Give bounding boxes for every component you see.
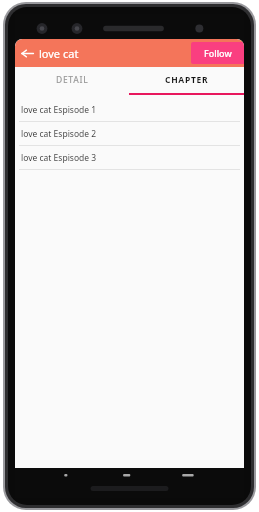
staticText: love cat Espisode 2 [21,128,97,140]
staticText: CHAPTER [165,74,209,86]
button[interactable]: love cat Espisode 1 [15,98,244,121]
button[interactable]: Back [15,39,39,67]
button[interactable]: love cat Espisode 3 [15,146,244,169]
button[interactable]: love cat Espisode 2 [15,122,244,145]
button[interactable]: DETAIL [15,67,129,93]
button[interactable]: CHAPTER [129,67,244,93]
staticText: love cat Espisode 3 [21,152,97,164]
staticText: Follow [204,47,232,59]
staticText: love cat [39,46,79,61]
button[interactable]: Follow [191,42,244,64]
staticText: love cat Espisode 1 [21,104,97,116]
staticText: DETAIL [56,74,89,86]
